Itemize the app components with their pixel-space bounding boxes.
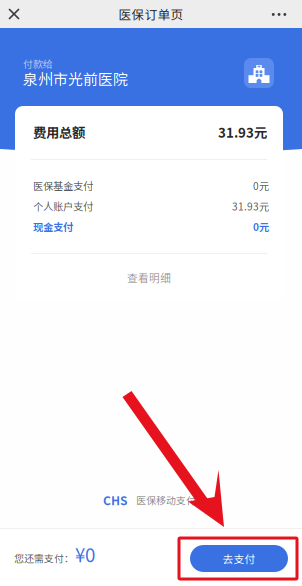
staticText: 医保订单页: [118, 5, 183, 23]
button[interactable]: More options: [264, 0, 298, 28]
staticText: ¥0: [75, 540, 95, 567]
staticText: 医保基金支付: [33, 178, 93, 193]
button[interactable]: 去支付: [190, 545, 288, 572]
staticText: 0元: [253, 219, 269, 234]
staticText: CHS: [103, 491, 127, 509]
staticText: 费用总额: [33, 122, 85, 142]
staticText: 31.93元: [232, 199, 269, 213]
button[interactable]: 查看明细: [15, 254, 283, 301]
staticText: 查看明细: [127, 270, 171, 285]
staticText: 付款给: [23, 56, 53, 71]
staticText: 现金支付: [33, 219, 73, 234]
staticText: 0元: [253, 178, 269, 193]
staticText: 医保移动支付: [136, 493, 196, 507]
staticText: 31.93元: [218, 122, 267, 142]
staticText: 泉州市光前医院: [23, 68, 128, 89]
staticText: 您还需支付：: [14, 551, 74, 565]
staticText: 个人账户支付: [33, 199, 93, 213]
button[interactable]: Close: [0, 0, 34, 28]
staticText: 去支付: [222, 551, 255, 566]
